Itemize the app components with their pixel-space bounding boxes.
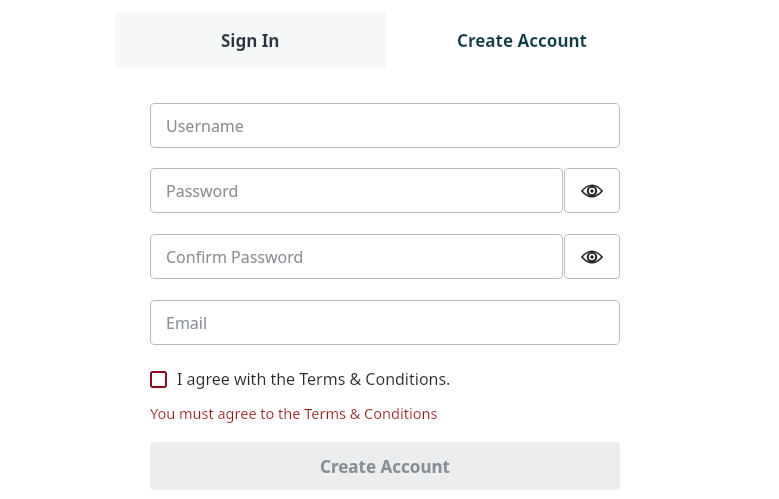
button[interactable]: Create Account [150,442,620,490]
button[interactable]: Username [150,103,620,148]
button[interactable]: Sign In [115,12,386,68]
staticText: Email [166,312,208,334]
button[interactable]: Show confirm password [564,234,620,279]
button[interactable]: Create Account [386,12,657,68]
button[interactable]: Email [150,300,620,345]
staticText: I agree with the Terms & Conditions. [177,368,451,390]
staticText: Username [166,115,244,137]
staticText: Password [166,180,239,202]
button[interactable]: I agree with the Terms & Conditions. [150,366,451,392]
button[interactable]: Show password [564,168,620,213]
staticText: Create Account [320,455,450,478]
staticText: Confirm Password [166,246,304,268]
button[interactable]: Confirm Password [150,234,563,279]
button[interactable]: Password [150,168,563,213]
staticText: Sign In [221,29,280,52]
staticText: You must agree to the Terms & Conditions [150,403,438,423]
staticText: Create Account [457,29,587,52]
